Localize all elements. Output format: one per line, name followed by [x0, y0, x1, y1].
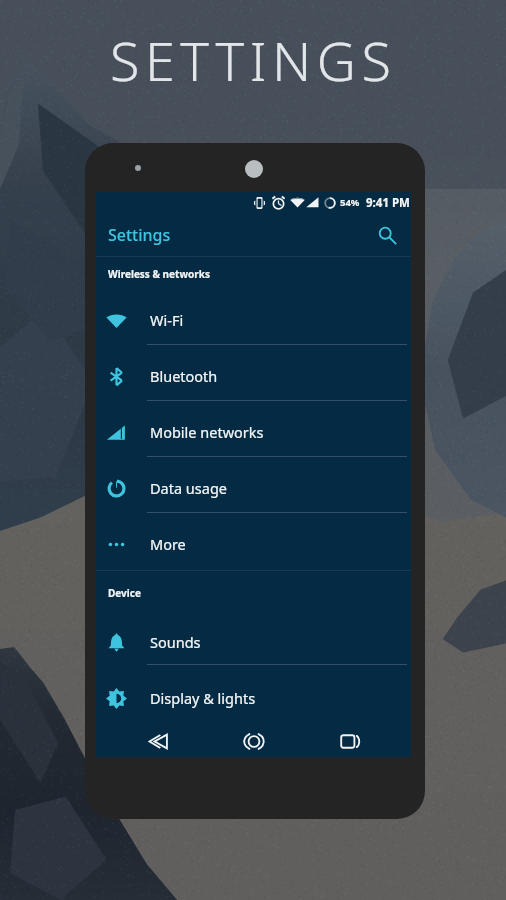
button[interactable]: Display & lights — [96, 670, 411, 726]
button[interactable]: More — [96, 516, 411, 572]
button[interactable]: Back — [135, 726, 182, 757]
staticText: Bluetooth — [150, 366, 218, 386]
staticText: Sounds — [150, 632, 201, 652]
staticText: 9:41 PM — [366, 195, 410, 211]
staticText: 54% — [340, 196, 360, 209]
staticText: Settings — [108, 224, 171, 246]
button[interactable]: Search — [371, 219, 403, 251]
staticText: Display & lights — [150, 688, 256, 708]
staticText: Device — [108, 586, 141, 600]
button[interactable]: Home — [230, 726, 278, 757]
staticText: Mobile networks — [150, 422, 264, 442]
staticText: Wireless & networks — [108, 267, 210, 281]
button[interactable]: Recents — [326, 726, 374, 757]
staticText: Wi-Fi — [150, 310, 184, 330]
staticText: SETTINGS — [110, 23, 397, 97]
button[interactable]: Sounds — [96, 614, 411, 670]
staticText: Data usage — [150, 478, 227, 498]
button[interactable]: Wi-Fi — [96, 292, 411, 348]
button[interactable]: Data usage — [96, 460, 411, 516]
button[interactable]: Mobile networks — [96, 404, 411, 460]
button[interactable]: Bluetooth — [96, 348, 411, 404]
staticText: More — [150, 534, 186, 554]
